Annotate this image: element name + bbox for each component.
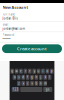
button[interactable]: i	[41, 69, 45, 74]
button[interactable]	[20, 87, 42, 92]
staticText: x	[23, 82, 24, 85]
button[interactable]: m	[43, 81, 47, 86]
button[interactable]: r	[24, 69, 27, 74]
staticText: g	[31, 75, 33, 79]
staticText: b	[35, 82, 37, 85]
button[interactable]: x	[21, 81, 25, 86]
button[interactable]: Create account	[2, 44, 62, 53]
button[interactable]: v	[30, 81, 34, 86]
staticText: Jordan Ellis	[2, 17, 17, 20]
staticText: Full name	[2, 13, 15, 16]
staticText: y	[34, 69, 35, 73]
staticText: e	[20, 69, 22, 73]
staticText: m	[44, 82, 46, 85]
button[interactable]: h	[35, 75, 38, 80]
button[interactable]: b	[35, 81, 38, 86]
staticText: f	[27, 75, 28, 79]
staticText: t	[29, 69, 30, 73]
button[interactable]: l	[48, 75, 51, 80]
staticText: h	[35, 75, 37, 79]
button[interactable]: p	[50, 69, 54, 74]
staticText: Create account	[17, 46, 47, 51]
button[interactable]: go	[43, 87, 52, 92]
staticText: c	[27, 82, 28, 85]
button[interactable]: f	[26, 75, 29, 80]
button[interactable]: q	[10, 69, 14, 74]
button[interactable]: g	[30, 75, 34, 80]
button[interactable]: t	[28, 69, 32, 74]
button[interactable]: s	[17, 75, 21, 80]
staticText: d	[22, 75, 24, 79]
staticText: q	[11, 69, 13, 73]
button[interactable]: e	[19, 69, 23, 74]
staticText: l	[49, 75, 50, 79]
staticText: z	[18, 82, 19, 85]
staticText: New Account	[2, 5, 28, 10]
staticText: r	[25, 69, 26, 73]
staticText: j	[40, 75, 41, 79]
button[interactable]: n	[39, 81, 43, 86]
staticText: a	[14, 75, 15, 79]
staticText: ••••••••	[2, 37, 10, 41]
staticText: w	[16, 69, 18, 73]
staticText: i	[42, 69, 43, 73]
button[interactable]: y	[32, 69, 36, 74]
staticText: 123	[12, 88, 18, 91]
staticText: u	[38, 69, 40, 73]
staticText: jordan@mail.com	[2, 27, 24, 30]
staticText: s	[18, 75, 19, 79]
button[interactable]: 123	[12, 87, 19, 92]
button[interactable]: a	[13, 75, 16, 80]
button[interactable]: c	[26, 81, 29, 86]
button[interactable]: w	[15, 69, 18, 74]
staticText: Email	[2, 23, 8, 26]
button[interactable]: u	[37, 69, 40, 74]
button[interactable]: k	[43, 75, 47, 80]
staticText: Password	[2, 33, 14, 37]
staticText: o	[46, 69, 48, 73]
button[interactable]: d	[21, 75, 25, 80]
button[interactable]: z	[17, 81, 21, 86]
staticText: k	[45, 75, 46, 79]
button[interactable]: j	[39, 75, 43, 80]
button[interactable]: o	[46, 69, 49, 74]
staticText: p	[51, 69, 53, 73]
staticText: n	[40, 82, 42, 85]
staticText: go	[46, 88, 50, 91]
